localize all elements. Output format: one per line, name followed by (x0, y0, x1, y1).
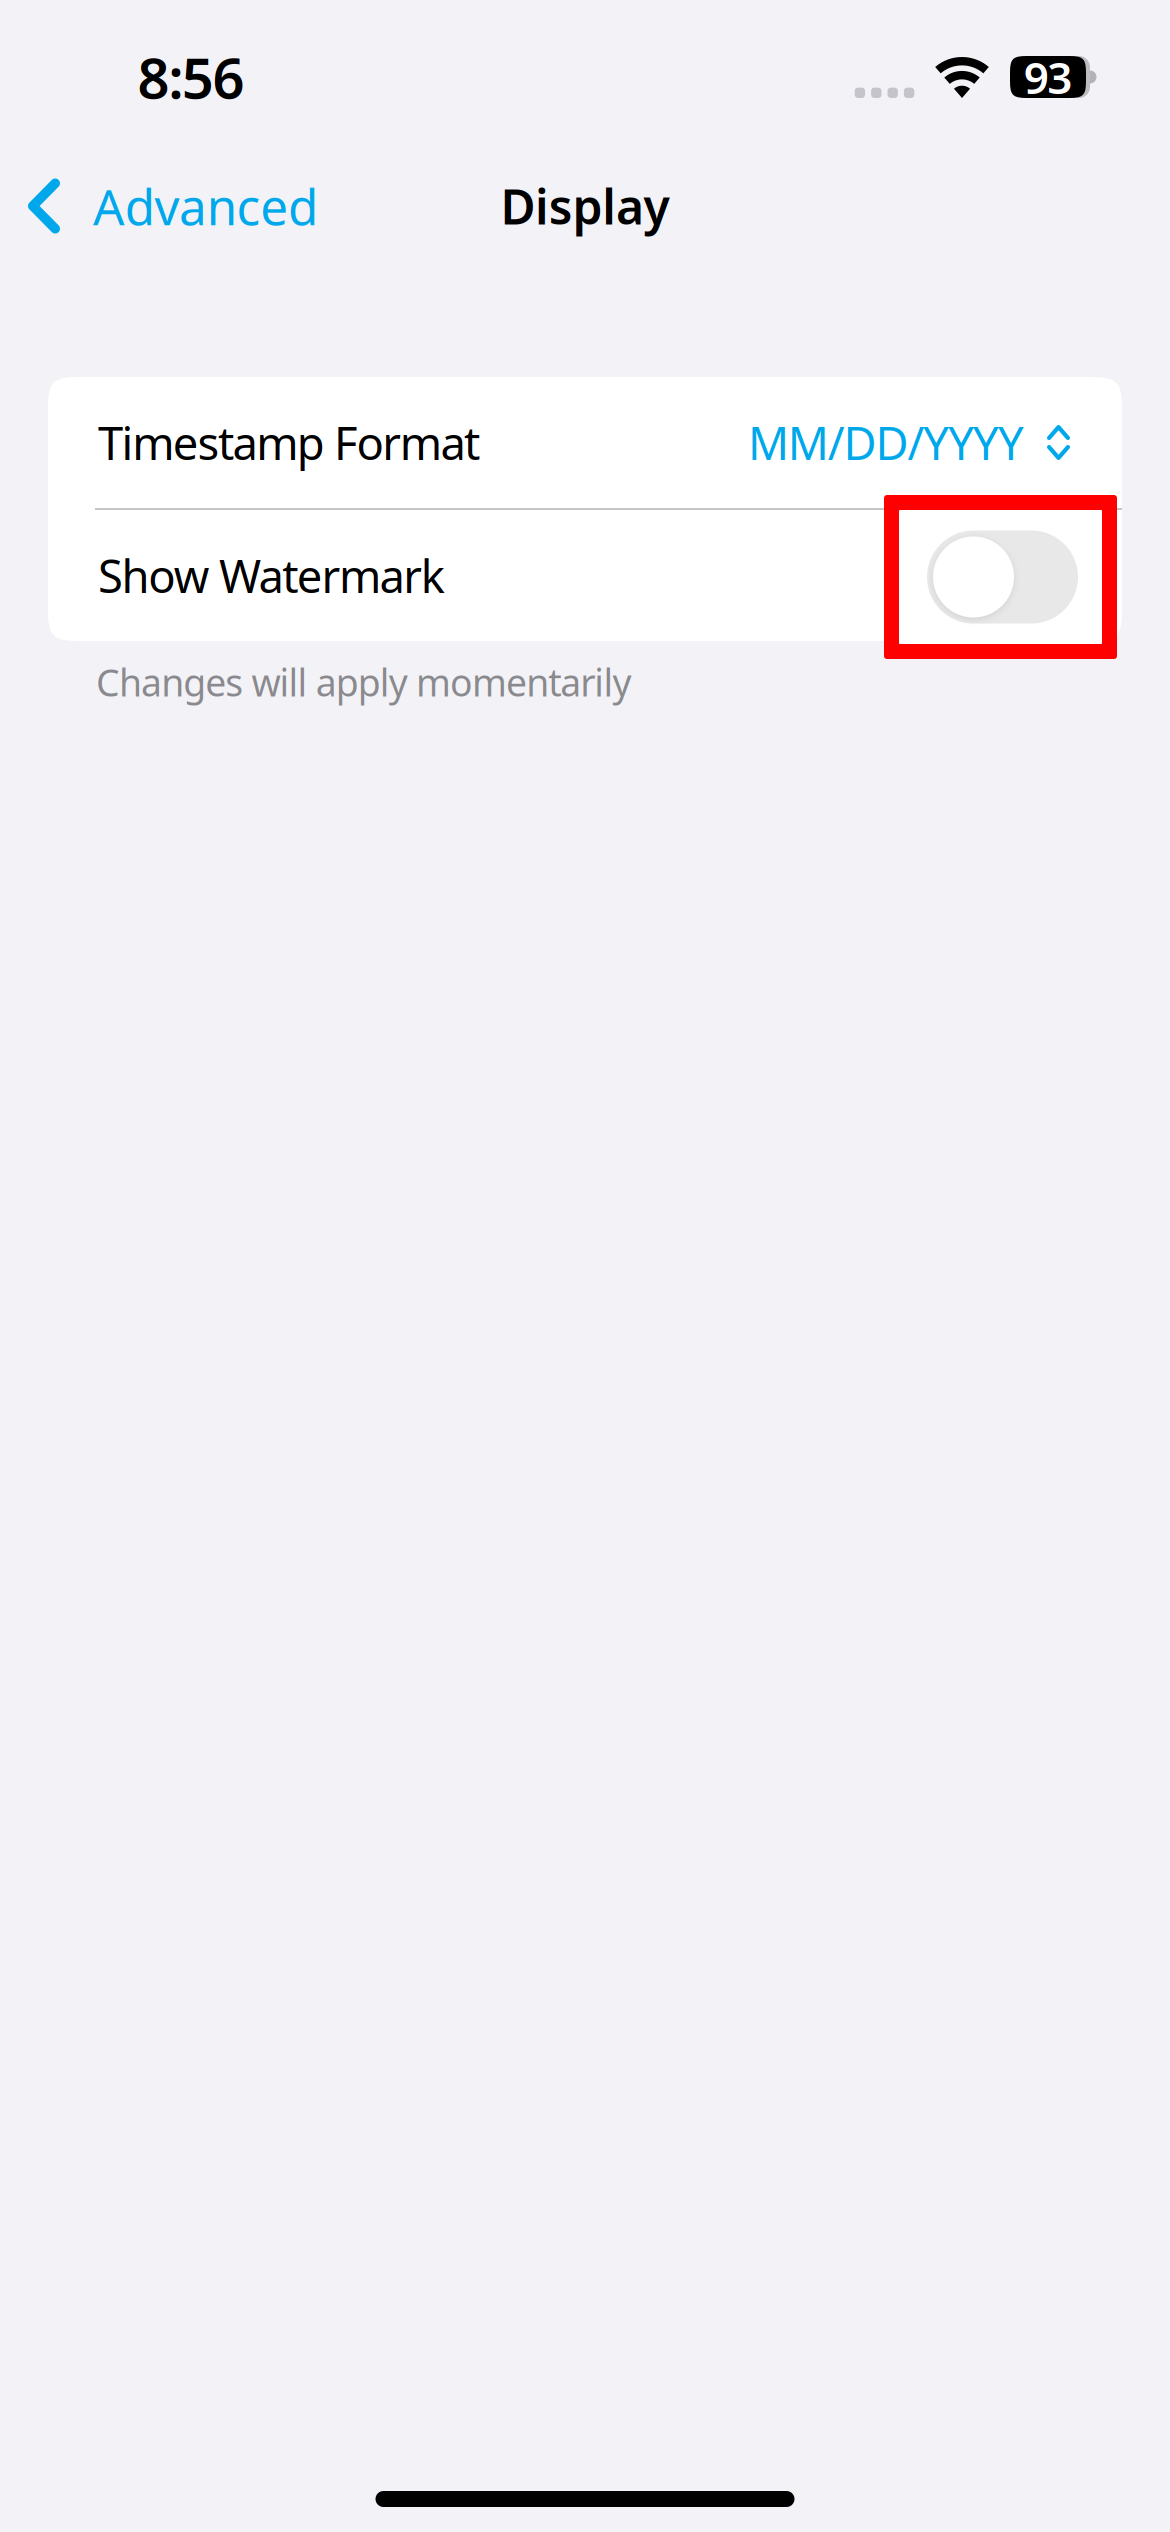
staticText: Changes will apply momentarily (96, 657, 631, 707)
staticText: 8:56 (138, 40, 244, 114)
staticText: MM/DD/YYYY (748, 412, 1024, 473)
button[interactable]: Show Watermark (927, 529, 1078, 622)
button[interactable]: Timestamp Format (48, 377, 1122, 508)
staticText: Timestamp Format (98, 412, 480, 473)
staticText: Advanced (93, 173, 318, 239)
staticText: Show Watermark (98, 545, 445, 606)
staticText: 93 (1024, 48, 1072, 106)
staticText: Display (500, 174, 670, 238)
button[interactable]: Advanced (0, 140, 348, 272)
